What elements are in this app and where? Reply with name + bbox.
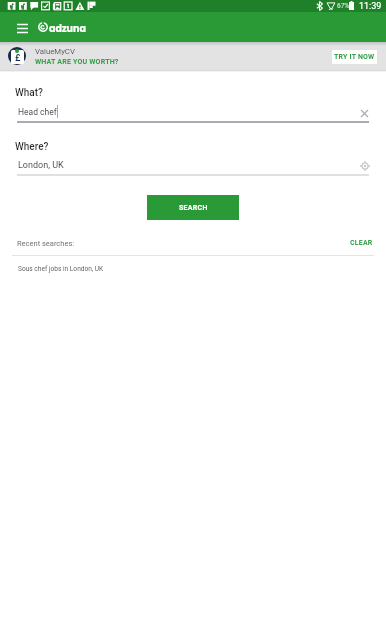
button[interactable]: CLEAR [345,235,378,251]
staticText: Sous chef jobs in London, UK [18,265,104,273]
button[interactable]: Sous chef jobs in London, UK [0,256,386,280]
staticText: Where? [15,141,49,153]
staticText: 11:39 [359,1,382,12]
staticText: WHAT ARE YOU WORTH? [35,57,119,65]
button[interactable]: Clear job title [356,105,373,122]
staticText: What? [15,87,43,99]
button[interactable]: TRY IT NOW [332,50,377,64]
button[interactable]: SEARCH [147,195,239,220]
button[interactable]: Use current location [356,157,373,174]
staticText: £ [15,53,21,64]
staticText: CLEAR [350,239,373,247]
staticText: 67% [337,2,350,10]
staticText: adzuna [49,22,86,35]
staticText: London, UK [18,160,64,171]
staticText: TRY IT NOW [334,53,375,61]
staticText: SEARCH [179,204,208,212]
staticText: Head chef [18,107,57,117]
staticText: ValueMyCV [35,47,75,56]
button[interactable]: Open navigation drawer [13,19,31,37]
staticText: Recent searches: [17,239,75,248]
